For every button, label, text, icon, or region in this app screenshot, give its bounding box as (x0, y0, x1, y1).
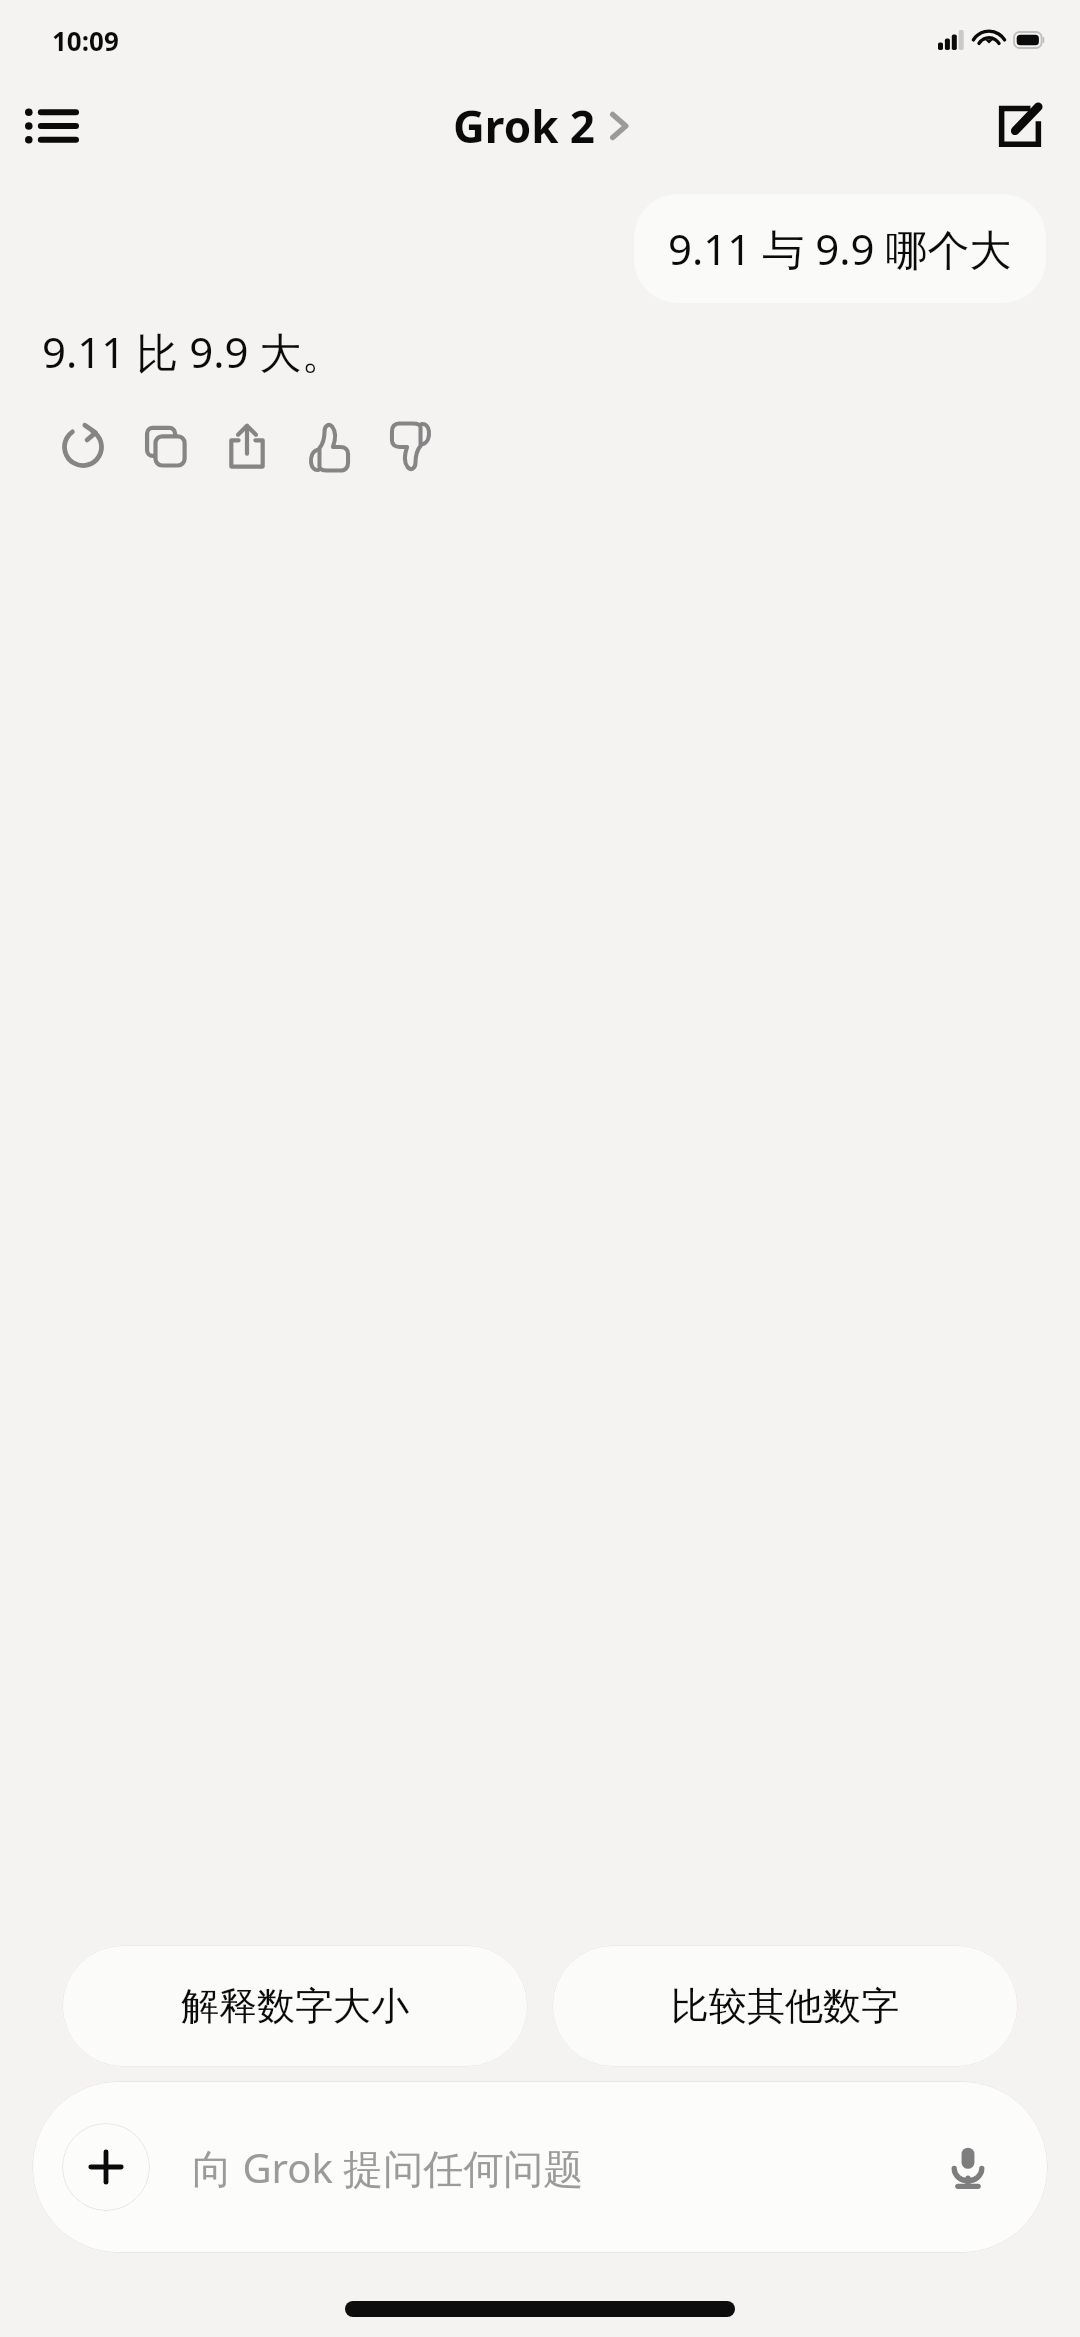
button[interactable]: Add attachment (32, 2081, 1048, 2253)
button[interactable]: Add attachment (62, 2123, 150, 2211)
button[interactable]: New chat (984, 90, 1056, 162)
button[interactable]: Like (288, 406, 370, 488)
staticText: 9.11 与 9.9 哪个大 (668, 220, 1012, 277)
button[interactable]: Grok 2 (453, 96, 628, 156)
button[interactable]: 解释数字大小 (62, 1945, 528, 2067)
button[interactable]: Dislike (370, 406, 452, 488)
staticText: 向 Grok 提问任何问题 (192, 2140, 584, 2195)
staticText: 9.11 比 9.9 大。 (42, 323, 344, 380)
button[interactable]: Copy (124, 406, 206, 488)
staticText: 比较其他数字 (671, 1982, 899, 2030)
staticText: 10:09 (52, 23, 119, 58)
button[interactable]: 比较其他数字 (552, 1945, 1018, 2067)
button[interactable]: Retry (42, 406, 124, 488)
staticText: 解释数字大小 (181, 1982, 409, 2030)
button[interactable]: 9.11 与 9.9 哪个大 (634, 194, 1046, 303)
staticText: Grok 2 (453, 96, 596, 156)
button[interactable]: Menu (18, 92, 86, 160)
button[interactable]: Share (206, 406, 288, 488)
button[interactable]: Voice input (930, 2129, 1006, 2205)
